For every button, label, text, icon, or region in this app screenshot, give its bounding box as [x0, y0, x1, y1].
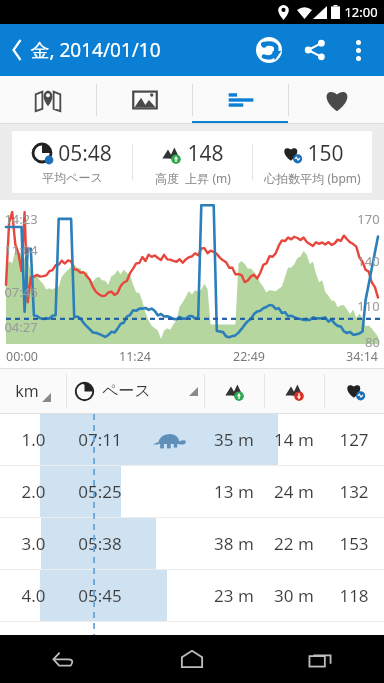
button[interactable] — [265, 368, 324, 414]
staticText: 170 — [357, 210, 380, 228]
staticText: 80 — [365, 333, 380, 351]
staticText: 07:11 — [78, 428, 122, 451]
staticText: 4.0 — [21, 584, 46, 607]
staticText: 2.0 — [21, 480, 46, 503]
staticText: 1.0 — [21, 428, 46, 451]
button[interactable]: 3.0 — [0, 518, 384, 569]
staticText: 05:48 — [58, 139, 112, 168]
staticText: 132 — [339, 480, 369, 503]
staticText: 34:14 — [346, 348, 378, 365]
staticText: 140 — [357, 252, 380, 270]
staticText: 3.0 — [21, 532, 46, 555]
staticText: 04:27 — [4, 318, 38, 336]
button[interactable]: 1.0 — [0, 414, 384, 465]
staticText: 22:49 — [233, 348, 265, 365]
button[interactable]: Recent apps — [256, 635, 384, 683]
button[interactable]: Replay route — [246, 27, 292, 73]
button[interactable]: More options — [338, 30, 378, 70]
staticText: 05:38 — [78, 532, 122, 555]
staticText: 38 m — [214, 532, 254, 555]
staticText: 118 — [339, 584, 369, 607]
staticText: 153 — [339, 532, 369, 555]
button[interactable]: Photos — [97, 76, 192, 124]
staticText: km — [15, 380, 39, 402]
staticText: 13 m — [214, 480, 254, 503]
staticText: 35 m — [214, 428, 254, 451]
staticText: 30 m — [274, 584, 314, 607]
staticText: 23 m — [214, 584, 254, 607]
staticText: 24 m — [274, 480, 314, 503]
staticText: 05:45 — [78, 584, 122, 607]
staticText: 110 — [357, 297, 380, 315]
staticText: 心拍数平均 (bpm) — [264, 170, 361, 186]
staticText: 14:23 — [4, 210, 38, 228]
staticText: 148 — [187, 139, 224, 168]
button[interactable]: Home — [128, 635, 256, 683]
staticText: 07:46 — [4, 283, 38, 301]
staticText: 11:04 — [4, 241, 38, 259]
button[interactable] — [325, 368, 384, 414]
staticText: 11:24 — [119, 348, 151, 365]
button[interactable]: ペース — [67, 368, 204, 414]
button[interactable] — [205, 368, 264, 414]
staticText: 14 m — [274, 428, 314, 451]
staticText: 22 m — [274, 532, 314, 555]
button[interactable]: Back — [0, 635, 128, 683]
button[interactable]: km — [0, 368, 66, 414]
staticText: 高度 上昇 (m) — [155, 170, 231, 186]
button[interactable]: Back — [8, 40, 26, 60]
staticText: 12:00 — [344, 3, 378, 21]
staticText: ペース — [102, 381, 151, 401]
button[interactable]: 4.0 — [0, 570, 384, 621]
button[interactable]: Share — [292, 27, 338, 73]
button[interactable]: Heart rate — [289, 76, 384, 124]
staticText: 05:25 — [78, 480, 122, 503]
staticText: 金, 2014/01/10 — [30, 37, 161, 63]
staticText: 127 — [339, 428, 369, 451]
button[interactable]: 05:48 — [12, 131, 372, 193]
staticText: 150 — [307, 139, 344, 168]
button[interactable]: Stats — [193, 76, 288, 124]
staticText: 00:00 — [6, 348, 38, 365]
button[interactable]: Map — [0, 76, 96, 124]
staticText: 平均ペース — [42, 170, 103, 185]
button[interactable]: 2.0 — [0, 466, 384, 517]
